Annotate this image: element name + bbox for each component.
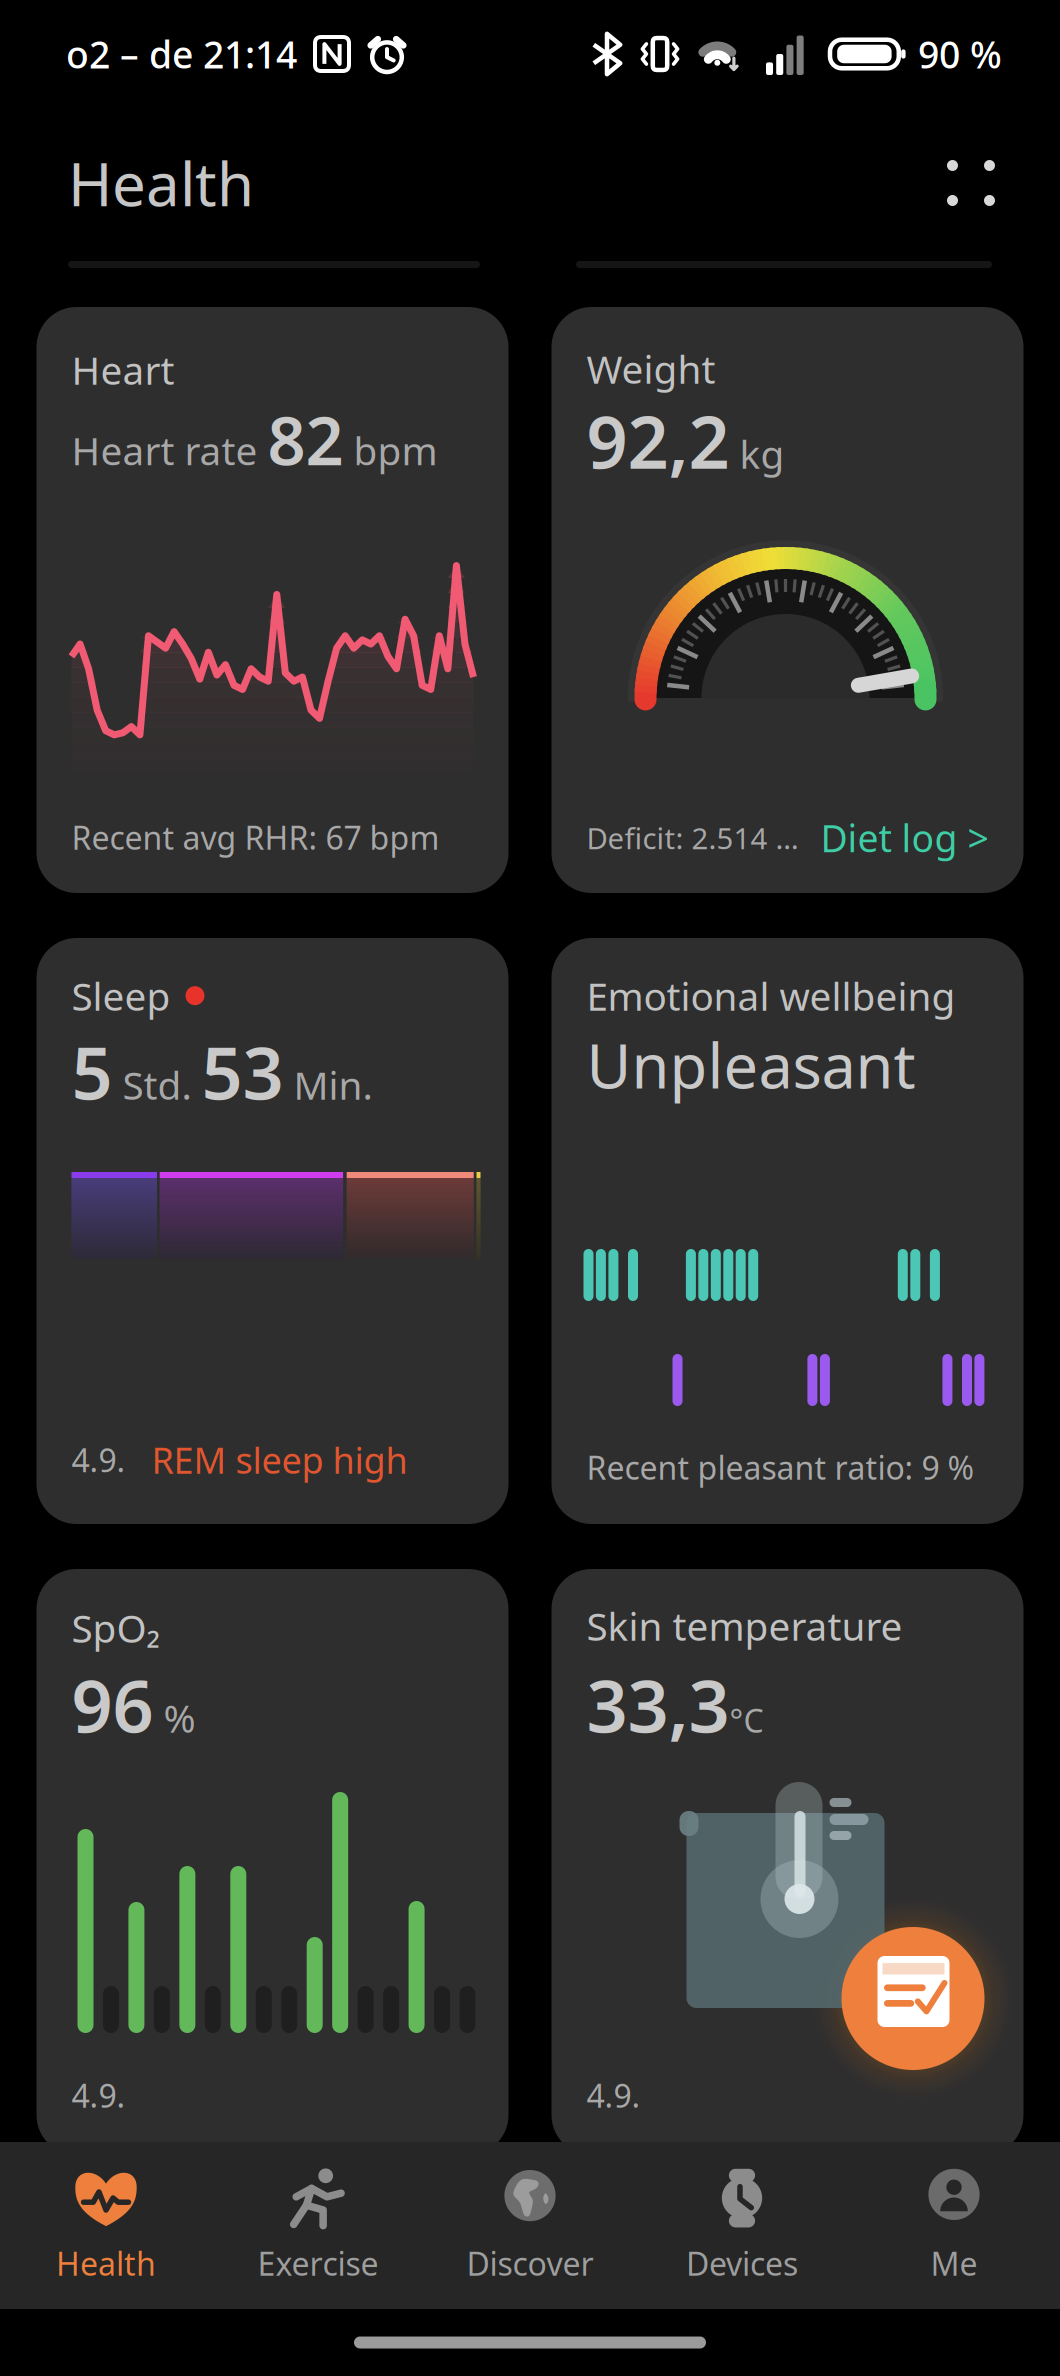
staticText: Discover bbox=[466, 2242, 593, 2284]
staticText: o2 – de 21:14 bbox=[66, 29, 297, 79]
button[interactable]: Exercise bbox=[212, 2142, 424, 2309]
staticText: 4.9. bbox=[71, 2074, 125, 2116]
staticText: 5 bbox=[71, 1024, 112, 1120]
staticText: SpO₂ bbox=[71, 1602, 160, 1653]
button[interactable]: Discover bbox=[424, 2142, 636, 2309]
staticText: °C bbox=[729, 1699, 763, 1742]
staticText: Me bbox=[930, 2242, 977, 2284]
staticText: Unpleasant bbox=[586, 1024, 915, 1105]
staticText: REM sleep high bbox=[151, 1436, 407, 1484]
staticText: Deficit: 2.514 … bbox=[586, 818, 798, 857]
button[interactable]: Devices bbox=[636, 2142, 848, 2309]
staticText: % bbox=[153, 1692, 195, 1743]
button[interactable]: SpO₂ bbox=[36, 1569, 508, 2155]
staticText: Health bbox=[68, 143, 254, 223]
staticText: Std. bbox=[112, 1059, 201, 1110]
staticText: 53 bbox=[201, 1024, 283, 1120]
button[interactable]: Me bbox=[848, 2142, 1060, 2309]
staticText: bpm bbox=[343, 424, 437, 476]
button[interactable]: Heart bbox=[36, 307, 508, 893]
staticText: 33,3 bbox=[586, 1657, 729, 1753]
staticText: Min. bbox=[283, 1059, 372, 1110]
button[interactable]: Sleep bbox=[36, 938, 508, 1524]
button[interactable]: Emotional wellbeing bbox=[551, 938, 1023, 1524]
button[interactable]: More options bbox=[916, 128, 1026, 238]
staticText: Recent avg RHR: 67 bpm bbox=[71, 816, 439, 858]
staticText: Exercise bbox=[257, 2242, 378, 2284]
button[interactable]: Health bbox=[0, 2142, 212, 2309]
staticText: 96 bbox=[71, 1657, 153, 1753]
staticText: 90 % bbox=[918, 29, 1002, 79]
staticText: kg bbox=[729, 428, 784, 479]
staticText: Devices bbox=[686, 2242, 798, 2284]
button[interactable]: Skin temperature bbox=[551, 1569, 1023, 2155]
staticText: Diet log > bbox=[820, 813, 988, 863]
staticText: Weight bbox=[586, 343, 715, 394]
staticText: Heart bbox=[71, 344, 174, 395]
staticText: Emotional wellbeing bbox=[586, 970, 955, 1021]
staticText: Recent pleasant ratio: 9 % bbox=[586, 1446, 974, 1488]
staticText: 82 bbox=[267, 395, 343, 483]
staticText: 4.9. bbox=[71, 1439, 125, 1481]
staticText: 92,2 bbox=[586, 393, 729, 489]
staticText: 4.9. bbox=[586, 2074, 640, 2116]
staticText: Heart rate bbox=[71, 424, 267, 476]
staticText: Sleep bbox=[71, 970, 170, 1021]
staticText: Health bbox=[56, 2242, 156, 2284]
button[interactable]: Weight bbox=[551, 307, 1023, 893]
staticText: Skin temperature bbox=[586, 1600, 902, 1651]
